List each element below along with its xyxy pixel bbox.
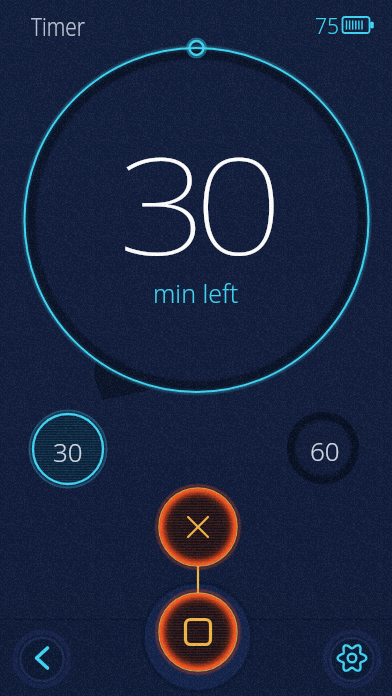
button[interactable]: Timer: [31, 9, 86, 43]
button[interactable]: 60: [290, 415, 360, 485]
button[interactable]: Back: [20, 636, 64, 680]
staticText: Timer: [31, 9, 86, 43]
staticText: 30: [118, 112, 270, 295]
button[interactable]: 30: [33, 416, 103, 486]
staticText: 60: [310, 433, 340, 468]
button[interactable]: Stop timer: [159, 593, 237, 671]
staticText: 30: [53, 434, 83, 469]
button[interactable]: Settings: [330, 636, 374, 680]
staticText: min left: [153, 276, 239, 310]
staticText: 75: [315, 12, 339, 41]
button[interactable]: Cancel timer: [159, 488, 237, 566]
